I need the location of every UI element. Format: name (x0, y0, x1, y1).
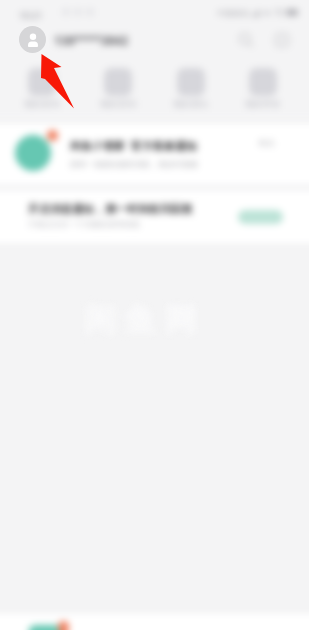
button[interactable]: Search (233, 27, 259, 53)
button[interactable]: Settings (269, 27, 295, 53)
button[interactable]: 我的评价 (238, 68, 288, 109)
staticText: 70 (274, 7, 284, 18)
staticText: 中国移动 (217, 8, 249, 18)
button[interactable]: 我的发布 (17, 68, 67, 109)
button[interactable]: Enable notifications (238, 210, 283, 224)
button[interactable]: 我的卖出 (166, 68, 216, 109)
staticText: 10:21 (19, 9, 43, 21)
staticText: 我的卖出 (173, 98, 209, 109)
button[interactable]: 开启消息通知，第一时间收到回复 (0, 191, 309, 243)
button[interactable]: 我的买到 (93, 68, 143, 109)
staticText: 138****3842 (54, 32, 129, 48)
staticText: 闲鱼小管家 官方客服通知 (70, 138, 197, 153)
button[interactable]: 闲鱼小管家 官方客服通知 (0, 124, 309, 184)
staticText: 不错过任何一个买家的咨询消息 (28, 219, 140, 229)
staticText: 开启消息通知，第一时间收到回复 (28, 202, 193, 216)
staticText: 您有一条新的服务消息，请及时查看 (70, 159, 198, 169)
button[interactable]: Profile (19, 26, 46, 53)
